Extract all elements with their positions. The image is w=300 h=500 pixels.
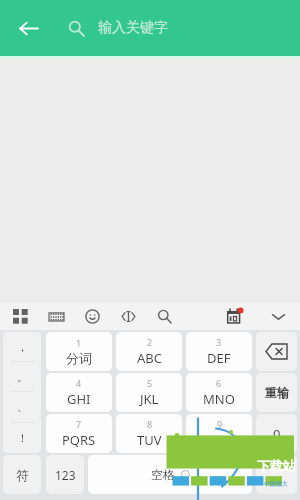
button[interactable]: Edit text <box>114 303 142 330</box>
button[interactable]: Keyboard <box>42 303 70 330</box>
button[interactable]: 、 <box>3 392 41 422</box>
staticText: 123 <box>55 467 76 483</box>
staticText: 2 <box>147 336 153 348</box>
button[interactable]: Emoji <box>78 303 106 330</box>
button[interactable]: Back <box>6 6 50 50</box>
staticText: 6 <box>216 377 222 389</box>
button[interactable]: Hide keyboard <box>265 303 291 330</box>
button[interactable]: 输入关键字 <box>68 5 168 51</box>
button[interactable]: ！ <box>3 423 41 453</box>
button[interactable]: 8 <box>116 414 182 453</box>
staticText: WXYZ <box>202 431 237 449</box>
staticText: 中国最大 <box>264 480 288 488</box>
staticText: 5 <box>147 377 153 389</box>
staticText: 9 <box>217 418 223 430</box>
staticText: GHI <box>67 390 91 408</box>
button[interactable]: 符 <box>3 455 41 494</box>
button[interactable]: Backspace <box>256 332 297 371</box>
staticText: 0 <box>273 425 281 443</box>
button[interactable]: 7 <box>46 414 112 453</box>
button[interactable]: 5 <box>116 373 182 412</box>
button[interactable]: 。 <box>3 362 41 391</box>
staticText: DEF <box>207 349 231 367</box>
staticText: 空格 <box>151 467 175 482</box>
button[interactable]: 重输 <box>256 373 297 412</box>
staticText: 输入关键字 <box>98 19 168 37</box>
button[interactable]: Calendar <box>221 303 247 330</box>
button[interactable]: 6 <box>186 373 252 412</box>
button[interactable]: Search <box>150 303 178 330</box>
staticText: 3 <box>216 336 222 348</box>
staticText: JKL <box>140 390 159 408</box>
staticText: PQRS <box>62 431 96 449</box>
button[interactable]: Apps <box>6 303 34 330</box>
button[interactable] <box>256 455 297 494</box>
staticText: 重输 <box>265 385 289 400</box>
staticText: ！ <box>17 431 28 445</box>
button[interactable]: ， <box>3 332 41 361</box>
staticText: 符 <box>16 467 29 483</box>
staticText: 1 <box>76 337 82 349</box>
staticText: 下载站 <box>257 458 296 474</box>
staticText: 分词 <box>66 350 92 366</box>
staticText: ， <box>17 340 28 354</box>
button[interactable]: 空格 <box>88 455 252 494</box>
button[interactable]: 123 <box>46 455 84 494</box>
staticText: TUV <box>137 431 162 449</box>
staticText: MNO <box>203 390 235 408</box>
staticText: 4 <box>76 377 82 389</box>
staticText: 、 <box>17 400 28 414</box>
staticText: ABC <box>137 349 162 367</box>
button[interactable]: 1 <box>46 332 112 371</box>
button[interactable]: 0 <box>256 414 297 453</box>
button[interactable]: 3 <box>186 332 252 371</box>
staticText: 7 <box>76 418 82 430</box>
staticText: 。 <box>17 370 28 384</box>
button[interactable]: 2 <box>116 332 182 371</box>
staticText: 8 <box>147 418 153 430</box>
button[interactable]: 9 <box>186 414 252 453</box>
button[interactable]: 4 <box>46 373 112 412</box>
